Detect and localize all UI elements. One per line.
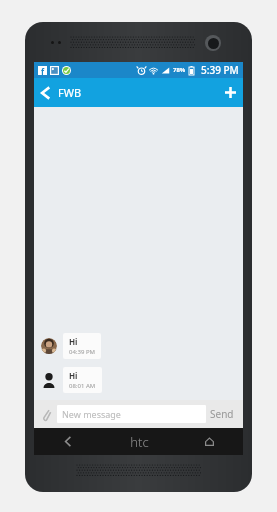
button[interactable]: Hi [34, 331, 243, 361]
button[interactable]: Back [34, 81, 88, 104]
button[interactable]: htc [102, 428, 176, 455]
button[interactable]: Attach [39, 405, 54, 424]
staticText: 04:39 PM [69, 348, 95, 356]
staticText: Send [210, 407, 234, 421]
staticText: 5:39 PM [201, 63, 239, 77]
staticText: Hi [69, 370, 78, 381]
button[interactable]: Hi [34, 365, 243, 395]
staticText: 78% [173, 66, 186, 74]
staticText: New message [62, 408, 121, 420]
staticText: 08:01 AM [69, 382, 96, 390]
button[interactable]: Add [218, 81, 243, 104]
button[interactable]: Back [34, 428, 102, 455]
staticText: htc [130, 433, 149, 451]
staticText: FWB [58, 85, 82, 100]
staticText: Hi [69, 336, 78, 347]
other: Back [41, 86, 50, 100]
staticText: f [41, 66, 45, 75]
button[interactable]: Send [206, 403, 238, 425]
button[interactable]: New message [57, 405, 206, 423]
button[interactable]: Home [176, 428, 243, 455]
